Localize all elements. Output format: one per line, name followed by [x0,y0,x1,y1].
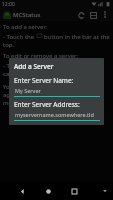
staticText: Enter Server Address: [14,100,80,109]
staticText: Enter Server Name: [14,76,74,85]
staticText: button in the bar at the [44,33,110,41]
button[interactable]: Recent apps [66,183,82,199]
staticText: Add a Server [14,62,54,71]
button[interactable]: myservername.somewhere.tld [14,111,100,121]
staticText: 12:00 [2,1,15,8]
staticText: To add a server: [3,23,48,31]
button[interactable]: My Server [14,87,100,97]
button[interactable]: Back [14,183,30,199]
staticText: MCStatus [13,11,41,19]
button[interactable]: More options [99,9,110,20]
staticText: top. [3,41,15,49]
button[interactable]: Home [40,183,56,199]
staticText: - Tap the panel to edit, or the trash [3,62,101,70]
button[interactable]: Add server [87,9,99,21]
button[interactable]: Hide [99,185,111,197]
staticText: You can access these instructions again … [3,83,110,107]
staticText: can to delete [3,70,40,78]
button[interactable]: Refresh [75,9,87,21]
staticText: My Server [15,87,41,94]
staticText: - Touch the [3,33,35,41]
staticText: To edit or remove a server: [3,52,79,60]
staticText: myservername.somewhere.tld [15,111,94,118]
